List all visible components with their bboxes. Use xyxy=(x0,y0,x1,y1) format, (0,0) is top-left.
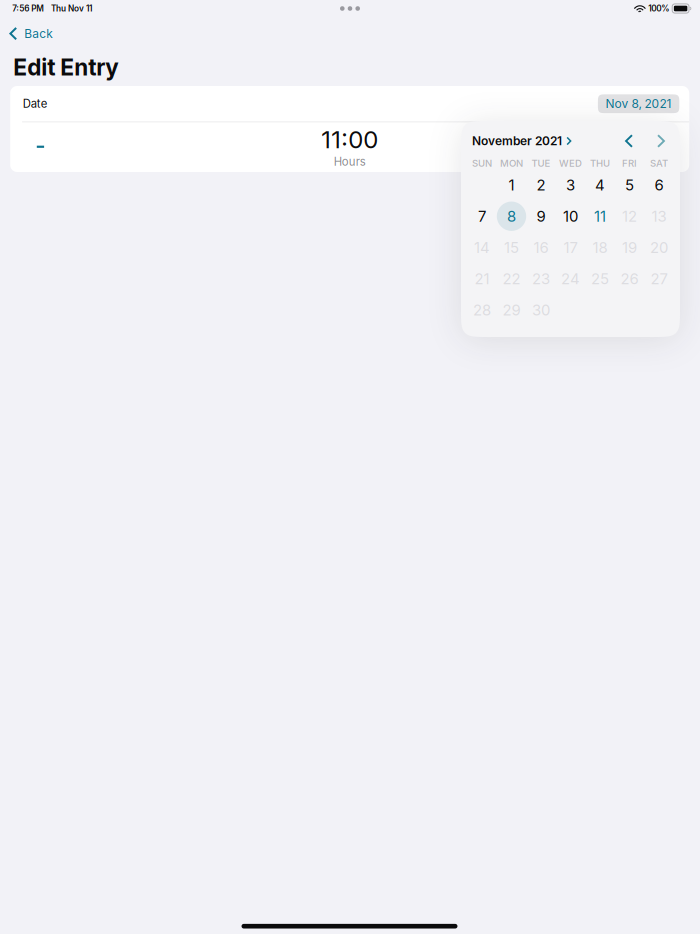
staticText: 10 xyxy=(563,207,578,225)
button[interactable]: 1 xyxy=(497,169,526,201)
button[interactable]: Previous month xyxy=(615,127,643,155)
button[interactable]: 13 xyxy=(644,201,674,232)
button[interactable]: Next month xyxy=(647,127,675,155)
staticText: November 2021 xyxy=(472,134,562,148)
button[interactable]: Increase hours xyxy=(639,127,679,167)
button[interactable]: 16 xyxy=(526,232,556,263)
staticText: 25 xyxy=(591,270,609,288)
button[interactable]: 22 xyxy=(497,263,526,294)
button[interactable]: 6 xyxy=(644,169,674,201)
staticText: SAT xyxy=(650,157,668,169)
button[interactable]: 14 xyxy=(467,232,497,263)
staticText: 27 xyxy=(650,270,667,288)
staticText: Nov 8, 2021 xyxy=(606,96,672,111)
button[interactable]: 26 xyxy=(615,263,644,294)
button[interactable]: 29 xyxy=(497,294,526,326)
button[interactable]: 4 xyxy=(585,169,615,201)
button[interactable]: November 2021 xyxy=(472,127,571,155)
staticText: 29 xyxy=(502,301,520,319)
staticText: 3 xyxy=(566,176,575,194)
staticText: 21 xyxy=(474,270,489,288)
staticText: 19 xyxy=(622,238,637,257)
button[interactable]: 25 xyxy=(585,263,615,294)
button[interactable]: Decrease hours xyxy=(20,127,60,167)
staticText: 6 xyxy=(654,176,663,194)
staticText: 16 xyxy=(533,238,548,257)
button[interactable]: 11 xyxy=(585,201,615,232)
staticText: 15 xyxy=(504,238,519,257)
button[interactable]: 9 xyxy=(526,201,556,232)
button[interactable]: 10 xyxy=(556,201,585,232)
staticText: 28 xyxy=(473,301,491,319)
staticText: 30 xyxy=(532,301,550,319)
button[interactable]: 15 xyxy=(497,232,526,263)
staticText: 7:56 PM xyxy=(12,3,44,13)
button[interactable]: 30 xyxy=(526,294,556,326)
staticText: 17 xyxy=(563,238,577,257)
staticText: FRI xyxy=(622,157,637,169)
button[interactable]: 8 xyxy=(497,201,526,232)
staticText: MON xyxy=(500,157,523,169)
staticText: Hours xyxy=(334,155,366,168)
staticText: 1 xyxy=(508,176,514,194)
staticText: 20 xyxy=(650,238,668,257)
staticText: Thu Nov 11 xyxy=(51,3,92,13)
button[interactable]: 3 xyxy=(556,169,585,201)
staticText: 7 xyxy=(478,207,486,225)
button[interactable]: 18 xyxy=(585,232,615,263)
staticText: SUN xyxy=(472,157,492,169)
button[interactable]: 23 xyxy=(526,263,556,294)
staticText: THU xyxy=(590,157,610,169)
button[interactable]: 24 xyxy=(556,263,585,294)
button[interactable]: 19 xyxy=(615,232,644,263)
button[interactable]: 2 xyxy=(526,169,556,201)
button[interactable]: 21 xyxy=(467,263,497,294)
staticText: 22 xyxy=(502,270,520,288)
button[interactable]: 27 xyxy=(644,263,674,294)
button[interactable]: Nov 8, 2021 xyxy=(598,94,679,113)
staticText: 2 xyxy=(536,176,545,194)
staticText: WED xyxy=(559,157,582,169)
staticText: Date xyxy=(23,97,48,111)
staticText: Edit Entry xyxy=(13,53,118,81)
staticText: 8 xyxy=(507,207,516,225)
staticText: 5 xyxy=(625,176,634,194)
button[interactable]: 5 xyxy=(615,169,644,201)
staticText: 11 xyxy=(594,207,606,225)
button[interactable]: 12 xyxy=(615,201,644,232)
staticText: TUE xyxy=(531,157,550,169)
staticText: 11:00 xyxy=(321,125,378,154)
staticText: 26 xyxy=(620,270,638,288)
button[interactable]: Back xyxy=(0,22,62,46)
staticText: 14 xyxy=(474,238,490,257)
staticText: 24 xyxy=(561,270,580,288)
button[interactable]: 28 xyxy=(467,294,497,326)
button[interactable]: 20 xyxy=(644,232,674,263)
staticText: 4 xyxy=(595,176,605,194)
staticText: 13 xyxy=(651,207,666,225)
staticText: 18 xyxy=(592,238,607,257)
staticText: 9 xyxy=(536,207,545,225)
staticText: 23 xyxy=(532,270,550,288)
staticText: Back xyxy=(24,26,53,41)
button[interactable]: 17 xyxy=(556,232,585,263)
staticText: 12 xyxy=(622,207,637,225)
button[interactable]: 7 xyxy=(467,201,497,232)
staticText: 100% xyxy=(648,3,669,13)
